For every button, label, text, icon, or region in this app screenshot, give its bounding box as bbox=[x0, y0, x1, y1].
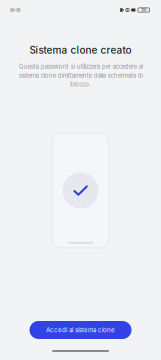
staticText: 100 bbox=[141, 8, 146, 12]
staticText: 20:33 bbox=[10, 8, 20, 12]
staticText: Sistema clone creato bbox=[29, 44, 131, 56]
staticText: Questa password si utilizzerà per accede… bbox=[18, 63, 142, 88]
staticText: Accedi al sistema clone bbox=[46, 326, 115, 334]
button[interactable]: Accedi al sistema clone bbox=[29, 321, 131, 339]
